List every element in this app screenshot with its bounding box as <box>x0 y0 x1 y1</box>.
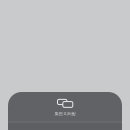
staticText: 화면 미러링 <box>54 111 75 116</box>
button[interactable]: 화면 미러링 <box>8 92 122 124</box>
